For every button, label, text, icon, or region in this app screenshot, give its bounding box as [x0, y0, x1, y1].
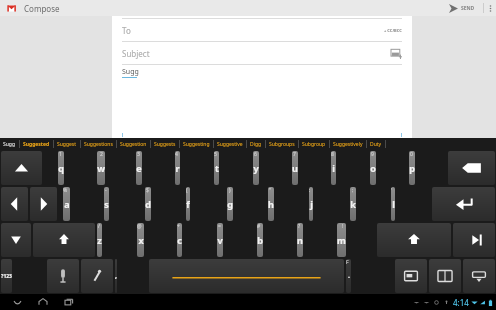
button[interactable]: SEND — [445, 0, 479, 16]
button[interactable]: c — [177, 223, 182, 257]
button[interactable]: + CC/BCC — [384, 28, 402, 33]
staticText: 1 — [59, 151, 62, 158]
staticText: d — [145, 198, 151, 210]
button[interactable]: l — [391, 187, 395, 221]
staticText: ?123 — [1, 273, 12, 280]
button[interactable]: Duty — [367, 138, 385, 150]
button[interactable]: Enter — [432, 187, 495, 221]
staticText: t — [215, 162, 219, 174]
button[interactable]: Recents — [62, 295, 76, 309]
staticText: w — [97, 162, 105, 174]
staticText: Suggestively — [333, 141, 363, 148]
button[interactable]: h — [268, 187, 274, 221]
staticText: % — [63, 187, 68, 194]
staticText: ? — [298, 223, 301, 230]
button[interactable]: Subgroups — [266, 138, 298, 150]
staticText: s — [104, 198, 109, 210]
staticText: m — [337, 234, 346, 246]
button[interactable]: To — [122, 19, 402, 41]
staticText: g — [227, 198, 233, 210]
button[interactable]: Suggestively — [330, 138, 366, 150]
button[interactable]: b — [257, 223, 263, 257]
button[interactable]: Up — [4, 1, 18, 15]
button[interactable]: q — [58, 151, 64, 185]
button[interactable]: k — [350, 187, 356, 221]
button[interactable]: . — [346, 259, 351, 293]
button[interactable]: d — [145, 187, 151, 221]
button[interactable]: g — [227, 187, 233, 221]
button[interactable]: Suggest — [54, 138, 80, 150]
staticText: o — [370, 162, 376, 174]
button[interactable]: w — [97, 151, 105, 185]
button[interactable]: Tab — [453, 223, 495, 257]
button[interactable]: a — [63, 187, 70, 221]
button[interactable]: Sugg — [122, 67, 139, 77]
button[interactable]: , — [115, 259, 117, 293]
staticText: Duty — [370, 141, 382, 148]
button[interactable]: Suggestions — [81, 138, 116, 150]
button[interactable]: Up — [1, 151, 42, 185]
button[interactable]: ?123 — [1, 259, 12, 293]
button[interactable]: Back — [10, 295, 24, 309]
staticText: , — [115, 271, 117, 281]
button[interactable]: z — [97, 223, 102, 257]
button[interactable]: Hide keyboard — [463, 259, 495, 293]
staticText: ' — [391, 187, 393, 194]
staticText: Sugg — [3, 141, 15, 148]
staticText: $ — [146, 187, 149, 194]
staticText: SEND — [461, 5, 475, 12]
staticText: ( — [186, 187, 188, 194]
staticText: Suggested — [23, 141, 50, 148]
staticText: To — [122, 25, 131, 36]
button[interactable]: i — [331, 151, 336, 185]
staticText: z — [97, 234, 102, 246]
button[interactable]: Shift — [33, 223, 95, 257]
button[interactable]: n — [297, 223, 303, 257]
button[interactable]: Split keyboard — [429, 259, 461, 293]
button[interactable]: Suggested — [20, 138, 53, 150]
button[interactable]: e — [136, 151, 142, 185]
button[interactable]: Settings — [81, 259, 113, 293]
staticText: 3 — [137, 151, 140, 158]
button[interactable]: Subject — [122, 42, 402, 64]
button[interactable]: y — [253, 151, 259, 185]
button[interactable]: f — [186, 187, 190, 221]
button[interactable]: p — [409, 151, 415, 185]
button[interactable]: r — [175, 151, 180, 185]
button[interactable]: Shift — [377, 223, 451, 257]
button[interactable]: Space — [149, 259, 344, 293]
staticText: F — [346, 259, 349, 266]
staticText: 8 — [331, 151, 334, 158]
staticText: q — [58, 162, 64, 174]
staticText: - — [105, 187, 107, 194]
button[interactable]: Suggesting — [180, 138, 213, 150]
button[interactable]: Right — [30, 187, 57, 221]
button[interactable]: t — [214, 151, 219, 185]
staticText: : — [309, 187, 311, 194]
staticText: r — [175, 162, 180, 174]
button[interactable]: Left — [1, 187, 28, 221]
button[interactable]: Subgroup — [299, 138, 329, 150]
button[interactable]: More options — [484, 0, 496, 16]
button[interactable]: Suggestion — [117, 138, 150, 150]
button[interactable]: Voice input — [47, 259, 79, 293]
staticText: ; — [352, 187, 354, 194]
button[interactable]: x — [137, 223, 144, 257]
button[interactable]: v — [217, 223, 223, 257]
button[interactable]: o — [370, 151, 376, 185]
button[interactable]: Suggestive — [214, 138, 246, 150]
staticText: Suggests — [154, 141, 176, 148]
button[interactable]: Home — [36, 295, 50, 309]
button[interactable]: s — [104, 187, 109, 221]
button[interactable]: j — [309, 187, 313, 221]
button[interactable]: m — [337, 223, 346, 257]
button[interactable]: Down — [1, 223, 31, 257]
staticText: " — [269, 187, 272, 194]
button[interactable]: Keyboard — [395, 259, 427, 293]
button[interactable]: Backspace — [448, 151, 495, 185]
button[interactable]: Attach image — [391, 48, 402, 59]
button[interactable]: u — [292, 151, 298, 185]
button[interactable]: Digg — [247, 138, 265, 150]
button[interactable]: Status — [413, 297, 496, 308]
button[interactable]: Suggests — [151, 138, 179, 150]
